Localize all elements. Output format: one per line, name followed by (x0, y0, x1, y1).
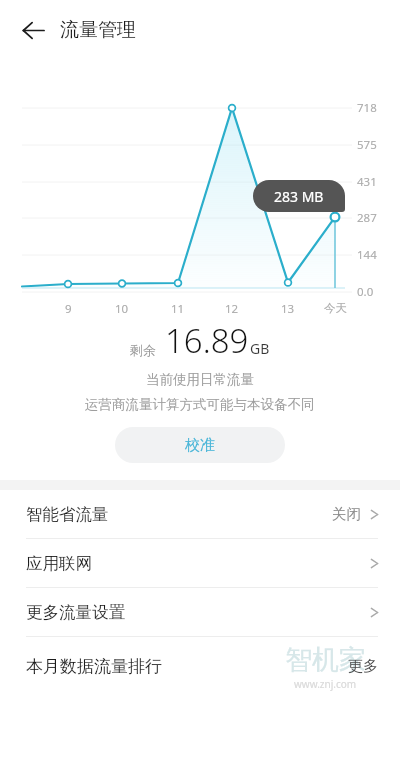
staticText: 更多 (348, 657, 378, 676)
staticText: 431 (357, 174, 377, 190)
staticText: 283 MB (274, 187, 324, 206)
staticText: 16.89 (165, 318, 249, 363)
button[interactable]: 283 MB (253, 180, 345, 212)
staticText: 144 (357, 247, 377, 263)
button[interactable]: Back (12, 9, 54, 51)
staticText: 0.0 (357, 284, 374, 300)
staticText: 关闭 (332, 505, 361, 523)
button[interactable]: 应用联网 (0, 539, 400, 587)
staticText: 校准 (185, 436, 215, 455)
staticText: 当前使用日常流量 (146, 371, 254, 388)
staticText: 287 (357, 210, 377, 226)
staticText: 运营商流量计算方式可能与本设备不同 (85, 396, 315, 413)
button[interactable]: 智能省流量 (0, 490, 400, 538)
staticText: 应用联网 (26, 553, 92, 574)
staticText: GB (250, 339, 270, 358)
button[interactable]: 本月数据流量排行 (0, 637, 400, 695)
staticText: 更多流量设置 (26, 602, 125, 623)
staticText: 9 (65, 301, 72, 317)
staticText: 575 (357, 137, 377, 153)
button[interactable]: 校准 (115, 427, 285, 463)
staticText: 剩余 (130, 342, 156, 358)
button[interactable]: 更多流量设置 (0, 588, 400, 636)
staticText: 13 (281, 301, 295, 317)
staticText: 流量管理 (60, 18, 136, 42)
staticText: 今天 (324, 301, 347, 315)
staticText: 11 (171, 301, 185, 317)
staticText: 12 (225, 301, 239, 317)
staticText: 718 (357, 100, 377, 116)
staticText: 本月数据流量排行 (26, 656, 162, 677)
staticText: 10 (115, 301, 129, 317)
staticText: www.znj.com (294, 677, 357, 691)
staticText: 智能省流量 (26, 504, 109, 525)
staticText: 智机家 (285, 643, 366, 677)
